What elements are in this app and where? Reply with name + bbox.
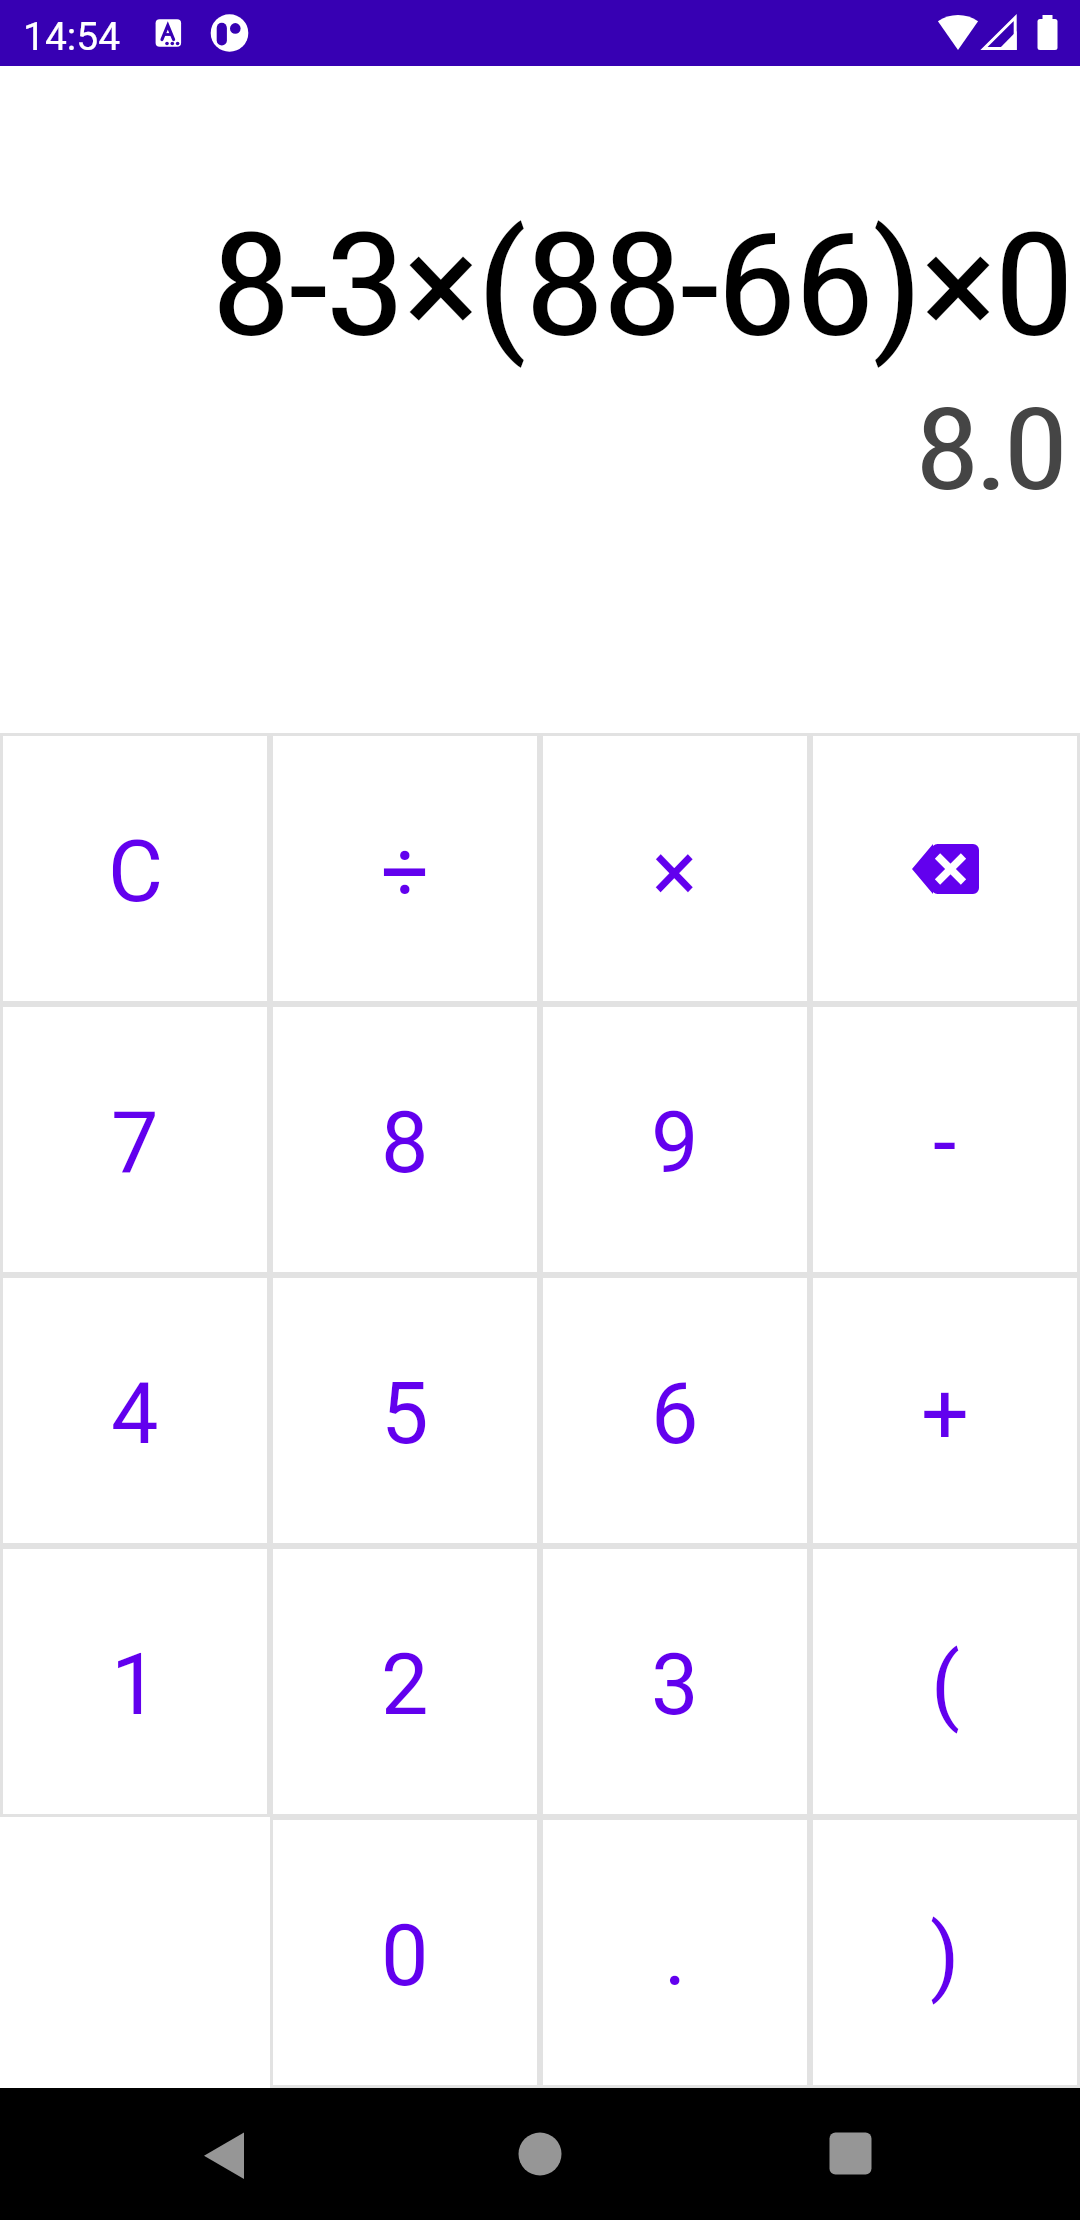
button[interactable]: ): [810, 1817, 1080, 2088]
button[interactable]: 9: [540, 1004, 810, 1275]
button[interactable]: 4: [0, 1275, 270, 1546]
button[interactable]: +: [810, 1275, 1080, 1546]
button[interactable]: 0: [270, 1817, 540, 2088]
staticText: 3: [651, 1636, 699, 1735]
staticText: C: [108, 823, 163, 922]
staticText: 8: [381, 1094, 429, 1193]
button[interactable]: 5: [270, 1275, 540, 1546]
button[interactable]: [190, 2120, 258, 2188]
staticText: .: [664, 1907, 687, 2006]
button[interactable]: 2: [270, 1546, 540, 1817]
staticText: 9: [651, 1094, 699, 1193]
staticText: 2: [381, 1636, 429, 1735]
staticText: 0: [381, 1907, 429, 2006]
button[interactable]: [816, 2120, 884, 2188]
button[interactable]: .: [540, 1817, 810, 2088]
staticText: 4: [111, 1365, 159, 1464]
staticText: ÷: [381, 823, 430, 922]
staticText: 1: [111, 1636, 159, 1735]
staticText: (: [931, 1636, 960, 1735]
staticText: +: [921, 1365, 969, 1464]
button[interactable]: (: [810, 1546, 1080, 1817]
button[interactable]: 6: [540, 1275, 810, 1546]
button[interactable]: ×: [540, 733, 810, 1004]
staticText: 7: [111, 1094, 159, 1193]
button[interactable]: 3: [540, 1546, 810, 1817]
staticText: -: [933, 1094, 957, 1193]
button[interactable]: [810, 733, 1080, 1004]
button[interactable]: -: [810, 1004, 1080, 1275]
staticText: 8.0: [0, 383, 1062, 517]
staticText: 6: [651, 1365, 699, 1464]
button[interactable]: 1: [0, 1546, 270, 1817]
staticText: 5: [381, 1365, 429, 1464]
staticText: 14:54: [23, 14, 121, 60]
button[interactable]: [506, 2120, 574, 2188]
staticText: ): [930, 1907, 960, 2006]
staticText: 8-3×(88-66)×0: [0, 202, 1071, 370]
button[interactable]: C: [0, 733, 270, 1004]
button[interactable]: ÷: [270, 733, 540, 1004]
button[interactable]: 7: [0, 1004, 270, 1275]
button[interactable]: 8: [270, 1004, 540, 1275]
staticText: ×: [652, 823, 698, 922]
